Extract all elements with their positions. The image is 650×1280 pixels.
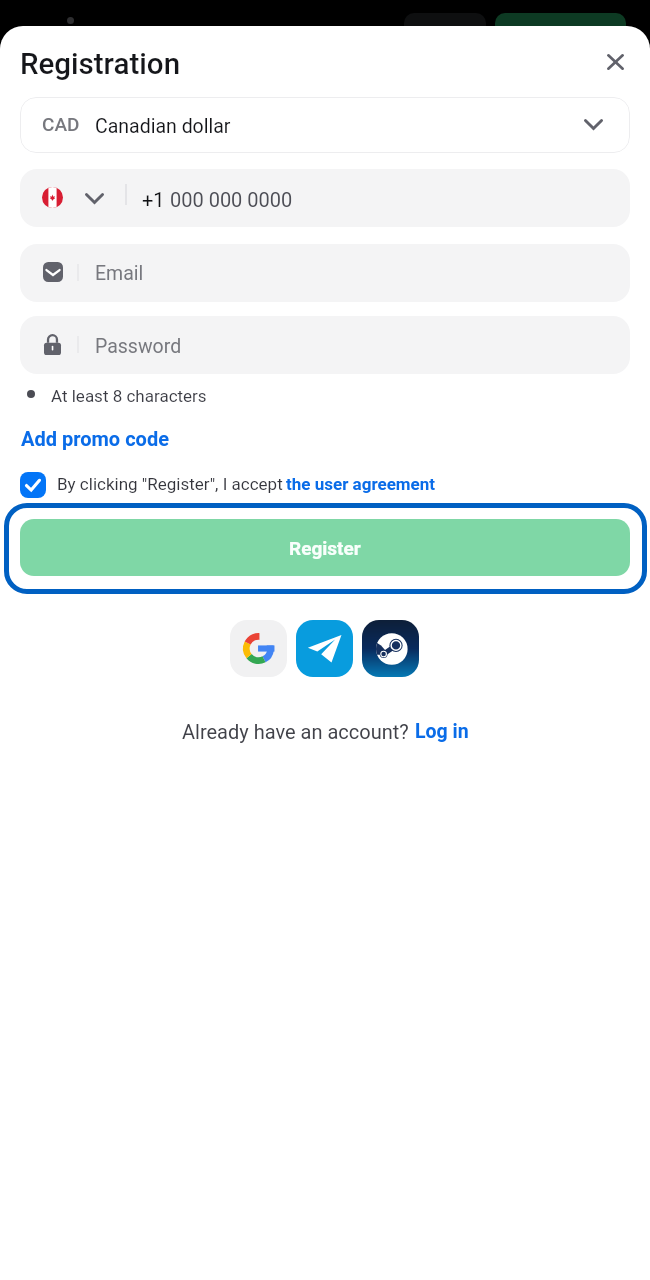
staticText: 000 000 0000 <box>165 188 293 211</box>
button[interactable]: Log in <box>415 720 469 743</box>
button[interactable]: Sign in with Telegram <box>296 620 353 677</box>
button[interactable]: +1 <box>20 169 630 227</box>
button[interactable]: I accept the user agreement <box>20 472 46 498</box>
staticText: Registration <box>20 47 181 82</box>
staticText: Already have an account? <box>182 720 409 743</box>
button[interactable]: Add promo code <box>21 427 169 450</box>
staticText: Canadian dollar <box>95 115 231 138</box>
staticText: +1 <box>142 188 165 211</box>
button[interactable]: Register <box>20 519 630 576</box>
button[interactable]: CAD <box>20 97 630 153</box>
staticText: Email <box>95 262 144 285</box>
button[interactable]: Sign in with Google <box>230 620 287 677</box>
button[interactable]: the user agreement <box>286 474 436 494</box>
staticText: By clicking "Register", I accept <box>57 474 283 494</box>
staticText: Log in <box>415 720 469 743</box>
staticText: Register <box>289 537 361 559</box>
button[interactable]: Sign in with Steam <box>362 620 419 677</box>
staticText: CAD <box>42 113 80 135</box>
button[interactable]: Password <box>20 316 630 374</box>
staticText: Password <box>95 335 182 358</box>
staticText: Add promo code <box>21 427 169 450</box>
staticText: the user agreement <box>286 474 436 494</box>
staticText: At least 8 characters <box>51 386 207 406</box>
button[interactable]: Email <box>20 244 630 302</box>
button[interactable]: Close <box>595 42 635 82</box>
